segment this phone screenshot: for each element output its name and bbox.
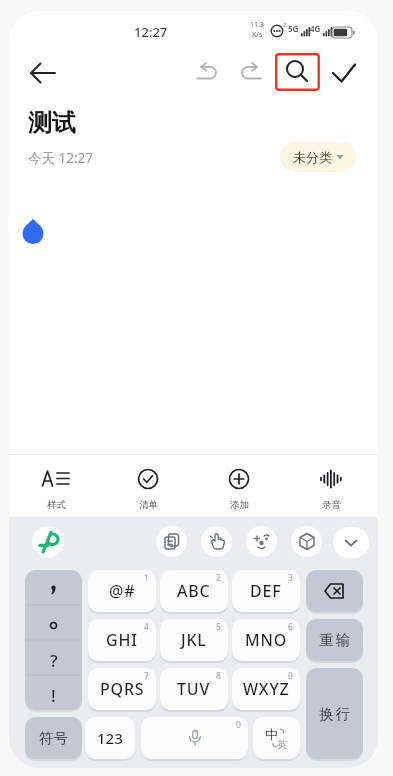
staticText: 4: [144, 621, 149, 633]
staticText: 5: [216, 621, 221, 633]
staticText: 中: [265, 726, 278, 742]
button[interactable]: [156, 526, 187, 557]
staticText: 2: [283, 21, 287, 29]
staticText: 录音: [322, 499, 341, 511]
button[interactable]: 0: [141, 717, 248, 759]
staticText: 符号: [39, 729, 68, 747]
button[interactable]: WXYZ: [232, 668, 300, 710]
button[interactable]: 中: [253, 717, 300, 759]
button[interactable]: DEF: [232, 570, 300, 612]
staticText: 今天 12:27: [28, 149, 94, 167]
staticText: DEF: [250, 580, 282, 602]
staticText: 8: [216, 670, 221, 682]
button[interactable]: [32, 526, 64, 558]
staticText: 清单: [139, 499, 158, 511]
button[interactable]: [291, 526, 322, 557]
staticText: 4G: [310, 23, 321, 34]
button[interactable]: GHI: [88, 619, 156, 661]
button[interactable]: [21, 59, 61, 89]
button[interactable]: PQRS: [88, 668, 156, 710]
button[interactable]: 123: [85, 717, 135, 759]
staticText: 11.3: [250, 20, 264, 30]
button[interactable]: [275, 53, 320, 91]
staticText: ABC: [177, 580, 211, 602]
button[interactable]: 样式: [26, 461, 86, 517]
staticText: 样式: [47, 499, 66, 511]
staticText: 6: [288, 621, 293, 633]
staticText: GHI: [106, 629, 138, 651]
button[interactable]: ABC: [160, 570, 228, 612]
staticText: JKL: [181, 629, 207, 651]
staticText: 测试: [28, 108, 76, 138]
staticText: 7: [144, 670, 149, 682]
staticText: K/s: [252, 30, 263, 40]
staticText: 换行: [318, 705, 351, 723]
button[interactable]: [201, 526, 232, 557]
staticText: 3: [288, 572, 293, 584]
button[interactable]: @#: [88, 570, 156, 612]
staticText: 1: [144, 572, 149, 584]
staticText: 9: [288, 670, 293, 682]
staticText: 5G: [288, 23, 299, 34]
button[interactable]: [327, 62, 363, 90]
button[interactable]: [306, 570, 363, 612]
staticText: TUV: [177, 678, 211, 700]
staticText: 添加: [230, 499, 249, 511]
button[interactable]: MNO: [232, 619, 300, 661]
staticText: !: [51, 684, 56, 707]
staticText: @#: [109, 580, 136, 602]
button[interactable]: 符号: [25, 717, 82, 759]
button[interactable]: 清单: [118, 461, 178, 517]
button[interactable]: [246, 526, 277, 557]
button[interactable]: 重输: [306, 619, 363, 661]
button[interactable]: 未分类: [280, 142, 356, 172]
staticText: WXYZ: [243, 678, 290, 700]
button[interactable]: 添加: [209, 461, 269, 517]
staticText: 未分类: [293, 149, 332, 165]
staticText: 2: [216, 572, 221, 584]
button[interactable]: [195, 59, 227, 87]
button[interactable]: [333, 527, 369, 558]
staticText: PQRS: [100, 678, 145, 700]
button[interactable]: 录音: [301, 461, 361, 517]
staticText: 重输: [318, 631, 351, 649]
button[interactable]: 换行: [306, 668, 363, 759]
staticText: 英: [277, 738, 287, 751]
button[interactable]: JKL: [160, 619, 228, 661]
staticText: MNO: [245, 629, 288, 651]
staticText: 123: [97, 728, 123, 748]
button[interactable]: [231, 59, 263, 87]
staticText: 0: [236, 719, 241, 731]
staticText: 12:27: [134, 23, 168, 41]
button[interactable]: [25, 570, 82, 710]
button[interactable]: TUV: [160, 668, 228, 710]
staticText: ?: [50, 649, 58, 672]
